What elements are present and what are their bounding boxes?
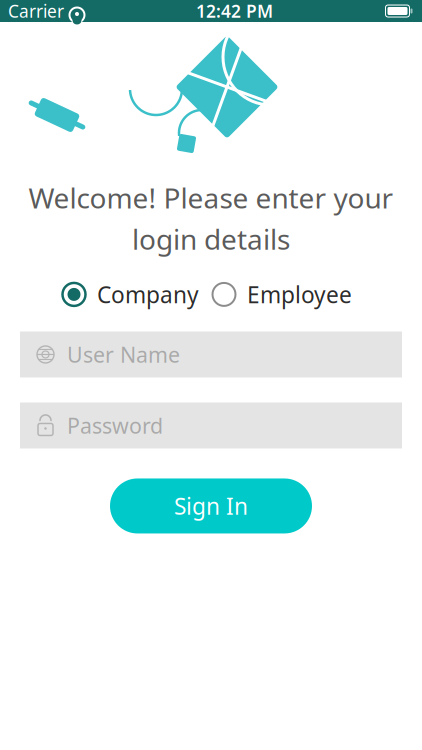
- staticText: User Name: [67, 340, 180, 369]
- button[interactable]: Password: [20, 402, 402, 448]
- button[interactable]: Company: [61, 279, 199, 309]
- staticText: Company: [97, 279, 199, 309]
- staticText: Employee: [247, 279, 352, 309]
- staticText: Carrier: [8, 0, 64, 22]
- button[interactable]: Employee: [211, 279, 352, 309]
- staticText: 12:42 PM: [196, 0, 273, 22]
- staticText: Sign In: [174, 491, 248, 521]
- button[interactable]: User Name: [20, 331, 402, 377]
- staticText: login details: [132, 220, 290, 257]
- button[interactable]: Sign In: [110, 478, 312, 533]
- staticText: Welcome! Please enter your: [28, 179, 393, 216]
- staticText: Password: [67, 411, 163, 440]
